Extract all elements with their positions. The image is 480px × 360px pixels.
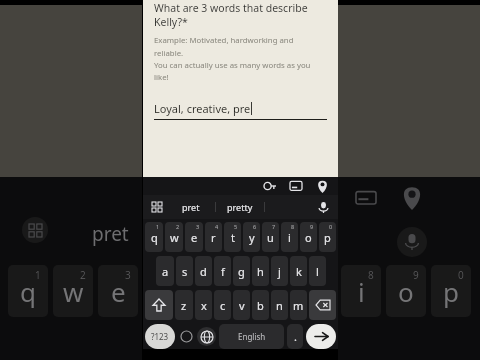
button[interactable]: v xyxy=(233,290,250,320)
button[interactable]: o xyxy=(300,222,317,252)
staticText: pret xyxy=(182,201,200,213)
staticText: 8 xyxy=(291,223,295,230)
staticText: w xyxy=(170,230,179,245)
button[interactable]: q xyxy=(145,222,163,252)
staticText: Loyal, creative, pre xyxy=(154,101,251,116)
button[interactable]: English xyxy=(219,324,284,349)
staticText: English xyxy=(238,331,266,342)
button[interactable]: r xyxy=(205,222,222,252)
staticText: f xyxy=(221,264,225,279)
button[interactable]: d xyxy=(195,256,212,286)
staticText: ?123 xyxy=(151,331,169,342)
staticText: i xyxy=(288,230,291,245)
staticText: 1 xyxy=(35,268,41,282)
button[interactable]: y xyxy=(243,222,260,252)
button[interactable]: Enter xyxy=(306,324,336,349)
button[interactable]: w xyxy=(165,222,183,252)
other: Card xyxy=(355,187,377,209)
staticText: 4 xyxy=(215,223,219,230)
other: Location xyxy=(399,185,425,211)
staticText: c xyxy=(220,298,226,313)
button[interactable]: s xyxy=(176,256,193,286)
staticText: b xyxy=(257,298,264,313)
staticText: 1 xyxy=(156,223,160,230)
button[interactable]: . xyxy=(287,324,303,349)
button[interactable]: e xyxy=(185,222,203,252)
staticText: What are 3 words that describe xyxy=(154,1,308,15)
staticText: o xyxy=(305,230,312,245)
button[interactable]: b xyxy=(252,290,269,320)
staticText: 0 xyxy=(329,223,333,230)
staticText: e xyxy=(191,230,198,245)
staticText: r xyxy=(211,230,216,245)
button[interactable]: l xyxy=(309,256,326,286)
staticText: k xyxy=(296,264,302,279)
button[interactable]: c xyxy=(214,290,231,320)
staticText: d xyxy=(200,264,207,279)
staticText: 8 xyxy=(368,268,374,282)
button[interactable]: pretty xyxy=(216,195,264,219)
button[interactable]: j xyxy=(271,256,288,286)
button[interactable]: k xyxy=(290,256,307,286)
staticText: v xyxy=(239,298,245,313)
button[interactable]: Loyal, creative, pre xyxy=(154,101,327,120)
staticText: 2 xyxy=(176,223,180,230)
staticText: Example: Motivated, hardworking and reli… xyxy=(154,35,311,82)
staticText: 0 xyxy=(458,268,464,282)
button[interactable]: a xyxy=(156,256,174,286)
staticText: w xyxy=(63,274,84,309)
button[interactable]: Shift xyxy=(145,290,173,320)
staticText: m xyxy=(293,298,304,313)
button[interactable]: x xyxy=(195,290,212,320)
staticText: 3 xyxy=(196,223,200,230)
staticText: 9 xyxy=(413,268,419,282)
button[interactable]: u xyxy=(262,222,279,252)
staticText: q xyxy=(151,230,158,245)
staticText: q xyxy=(20,274,36,309)
button[interactable]: Addresses xyxy=(314,178,330,194)
button[interactable]: Backspace xyxy=(309,290,336,320)
button[interactable]: i xyxy=(281,222,298,252)
staticText: pret xyxy=(92,221,129,247)
staticText: 9 xyxy=(310,223,314,230)
staticText: . xyxy=(294,329,297,344)
staticText: u xyxy=(267,230,274,245)
staticText: z xyxy=(181,298,187,313)
button[interactable]: h xyxy=(252,256,269,286)
staticText: n xyxy=(276,298,283,313)
staticText: p xyxy=(324,230,331,245)
button[interactable]: Toolbar xyxy=(147,197,167,217)
button[interactable]: pret xyxy=(167,195,215,219)
staticText: h xyxy=(257,264,264,279)
staticText: g xyxy=(238,264,245,279)
staticText: 5 xyxy=(234,223,238,230)
button[interactable]: g xyxy=(233,256,250,286)
staticText: t xyxy=(231,230,235,245)
staticText: p xyxy=(443,274,459,309)
button[interactable]: Change keyboard xyxy=(197,327,216,346)
staticText: 6 xyxy=(253,223,257,230)
staticText: Kelly?* xyxy=(154,15,188,29)
staticText: i xyxy=(358,274,365,309)
staticText: y xyxy=(249,230,255,245)
staticText: e xyxy=(111,274,126,309)
button[interactable]: Passwords xyxy=(262,178,278,194)
button[interactable]: f xyxy=(214,256,231,286)
staticText: l xyxy=(316,264,319,279)
button[interactable]: p xyxy=(319,222,336,252)
button[interactable]: m xyxy=(290,290,307,320)
button[interactable]: Voice input xyxy=(313,197,333,217)
staticText: 2 xyxy=(80,268,86,282)
button[interactable]: z xyxy=(175,290,193,320)
button[interactable]: Emoji xyxy=(178,328,195,345)
button[interactable]: n xyxy=(271,290,288,320)
staticText: j xyxy=(278,264,281,279)
staticText: s xyxy=(182,264,188,279)
button[interactable]: Payment methods xyxy=(288,178,304,194)
button[interactable]: t xyxy=(224,222,241,252)
staticText: 3 xyxy=(125,268,131,282)
staticText: a xyxy=(162,264,169,279)
button[interactable]: ?123 xyxy=(145,324,175,349)
staticText: o xyxy=(398,274,414,309)
staticText: pretty xyxy=(227,201,253,213)
